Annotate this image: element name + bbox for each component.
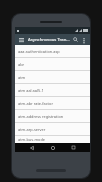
staticText: atm [18,75,26,80]
staticText: Asynchronous Transf… [28,37,71,43]
button[interactable]: Back [27,143,36,152]
button[interactable]: atm [15,71,90,83]
staticText: atm-address registration [18,114,64,119]
staticText: aaa authentication.asp [18,49,60,54]
button[interactable]: atm-bus-mode [15,136,90,143]
staticText: abr [18,62,25,67]
button[interactable]: atm-arp-server [15,123,90,135]
button[interactable]: abr [15,58,90,70]
staticText: atm-arp-server [18,127,46,132]
button[interactable]: aaa authentication.asp [15,45,90,57]
button[interactable]: atm aal aal5-1 [15,84,90,96]
button[interactable]: Open navigation drawer [17,35,26,44]
staticText: atm aal aal5-1 [18,88,44,93]
staticText: atm-abr rate-factor [18,101,53,106]
button[interactable]: Search [71,35,80,44]
button[interactable]: More options [80,36,88,44]
button[interactable]: atm-abr rate-factor [15,97,90,109]
button[interactable]: Home [48,143,57,152]
staticText: atm-bus-mode [18,137,45,142]
button[interactable]: Recent apps [69,143,78,152]
button[interactable]: atm-address registration [15,110,90,122]
